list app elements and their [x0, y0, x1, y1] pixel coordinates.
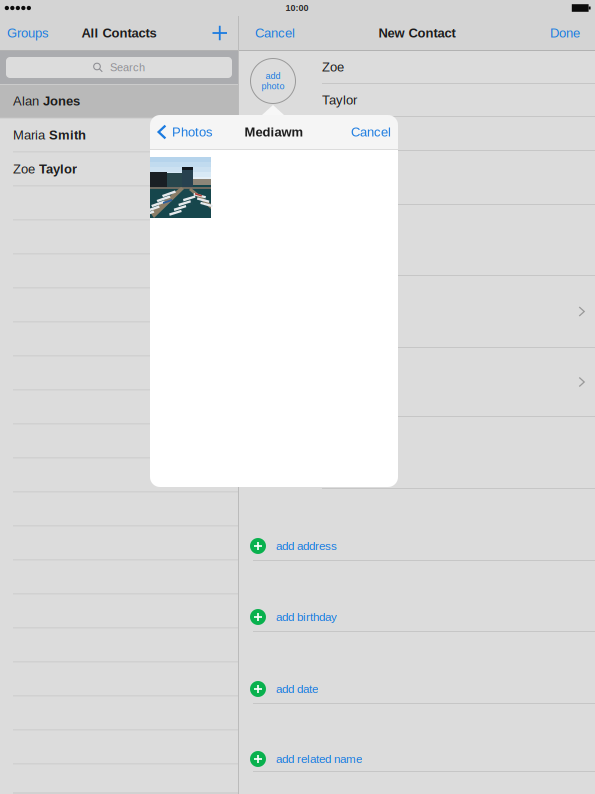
button[interactable]: Zoe	[0, 152, 238, 186]
staticText: add birthday	[276, 610, 337, 623]
staticText: Photos	[172, 125, 213, 139]
button[interactable]: Add contact	[212, 16, 238, 50]
button[interactable]: Maria	[0, 118, 238, 152]
staticText: Cancel	[351, 125, 391, 139]
button[interactable]: add related name	[239, 704, 595, 772]
staticText: Cancel	[255, 26, 295, 40]
staticText: Smith	[49, 128, 86, 142]
button[interactable]: add date	[239, 632, 595, 704]
button[interactable]: Done	[550, 16, 595, 50]
button[interactable]: Cancel	[351, 115, 398, 149]
button[interactable]: add address	[239, 489, 595, 561]
staticText: Groups	[7, 26, 49, 40]
staticText: Zoe	[322, 60, 344, 74]
staticText: Taylor	[322, 93, 357, 107]
staticText: Search	[110, 61, 145, 74]
button[interactable]: add birthday	[239, 561, 595, 632]
staticText: Done	[550, 26, 580, 40]
staticText: Taylor	[39, 162, 77, 176]
staticText: 10:00	[285, 3, 308, 13]
staticText: Mediawm	[244, 125, 303, 139]
staticText	[45, 128, 49, 142]
staticText: Jones	[43, 94, 80, 108]
staticText: New Contact	[378, 26, 455, 40]
staticText: add date	[276, 682, 318, 695]
staticText: Zoe	[13, 162, 35, 176]
staticText: Alan	[13, 94, 39, 108]
staticText: add address	[276, 539, 337, 552]
button[interactable]: Cancel	[239, 16, 295, 50]
button[interactable]: Groups	[0, 16, 49, 50]
button[interactable]: Photos	[150, 115, 213, 149]
button[interactable]: add	[250, 58, 295, 103]
staticText: All Contacts	[81, 26, 156, 40]
button[interactable]: Alan	[0, 84, 238, 118]
staticText: Maria	[13, 128, 45, 142]
staticText: add related name	[276, 752, 362, 765]
button[interactable]: Search	[6, 57, 232, 78]
staticText: add	[265, 71, 280, 81]
staticText: photo	[261, 81, 284, 91]
